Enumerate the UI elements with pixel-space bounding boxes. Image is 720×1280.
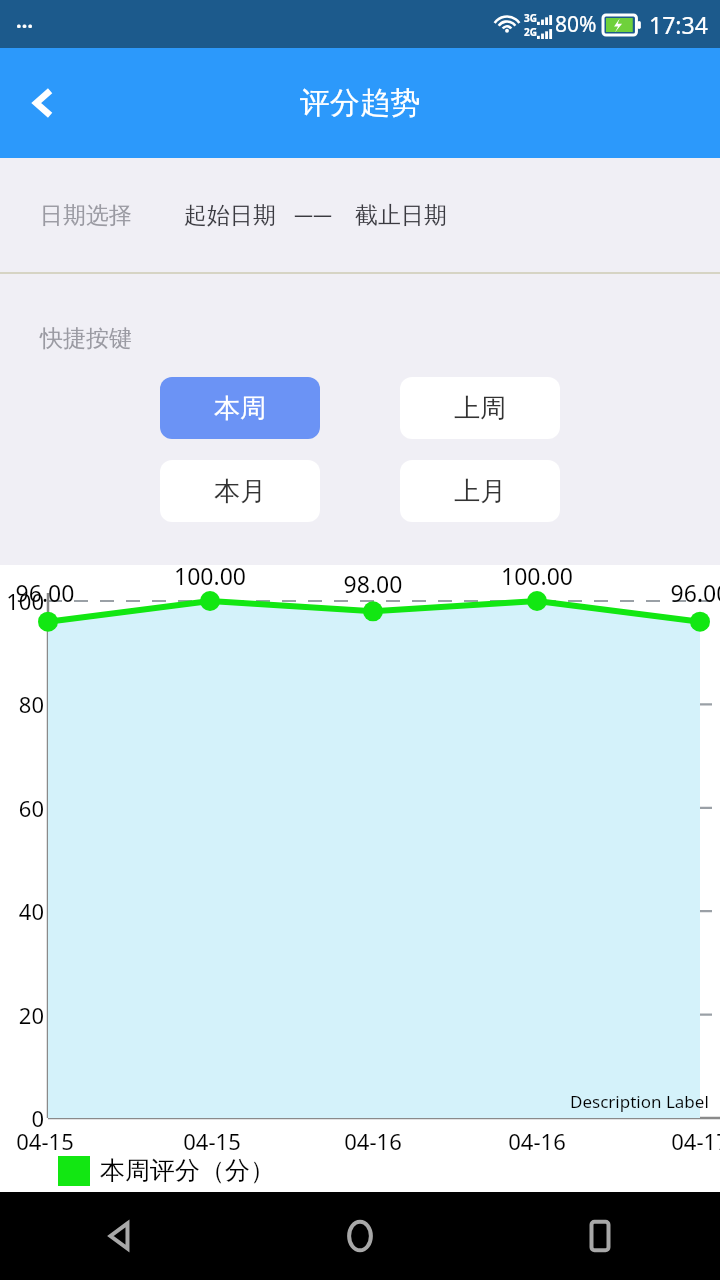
- staticText: 04-16: [487, 1126, 587, 1156]
- staticText: 0: [0, 1103, 44, 1133]
- button[interactable]: Recent apps: [480, 1192, 720, 1280]
- staticText: 本月: [214, 475, 266, 508]
- staticText: 60: [0, 793, 44, 823]
- staticText: 上周: [454, 392, 506, 425]
- staticText: 100.00: [150, 560, 270, 591]
- staticText: 96.00: [640, 577, 720, 608]
- staticText: ——: [294, 202, 333, 228]
- staticText: Description Label: [570, 1090, 709, 1113]
- staticText: 98.00: [313, 568, 433, 599]
- staticText: 上月: [454, 475, 506, 508]
- staticText: 100: [0, 586, 44, 616]
- button[interactable]: Back: [0, 48, 88, 158]
- button[interactable]: 上周: [400, 377, 560, 439]
- staticText: 本周评分（分）: [100, 1155, 275, 1186]
- staticText: 日期选择: [40, 201, 132, 230]
- staticText: 3G: [524, 11, 537, 25]
- staticText: 本周: [214, 392, 266, 425]
- staticText: 04-17: [650, 1126, 720, 1156]
- staticText: 评分趋势: [300, 84, 420, 122]
- staticText: 04-15: [162, 1126, 262, 1156]
- staticText: 起始日期: [184, 201, 276, 230]
- button[interactable]: 上月: [400, 460, 560, 522]
- staticText: 快捷按键: [40, 324, 132, 353]
- button[interactable]: Home: [240, 1192, 480, 1280]
- button[interactable]: 本月: [160, 460, 320, 522]
- staticText: …: [16, 7, 34, 34]
- staticText: 80%: [555, 10, 597, 39]
- staticText: 100.00: [477, 560, 597, 591]
- staticText: 40: [0, 896, 44, 926]
- staticText: 04-16: [323, 1126, 423, 1156]
- staticText: 截止日期: [355, 201, 447, 230]
- staticText: 20: [0, 1000, 44, 1030]
- button[interactable]: 日期选择: [0, 158, 720, 272]
- staticText: 04-15: [0, 1126, 95, 1156]
- staticText: 96.00: [0, 577, 105, 608]
- staticText: 2G: [524, 25, 537, 39]
- staticText: 80: [0, 689, 44, 719]
- button[interactable]: Back: [0, 1192, 240, 1280]
- staticText: 17:34: [649, 9, 708, 40]
- button[interactable]: 本周: [160, 377, 320, 439]
